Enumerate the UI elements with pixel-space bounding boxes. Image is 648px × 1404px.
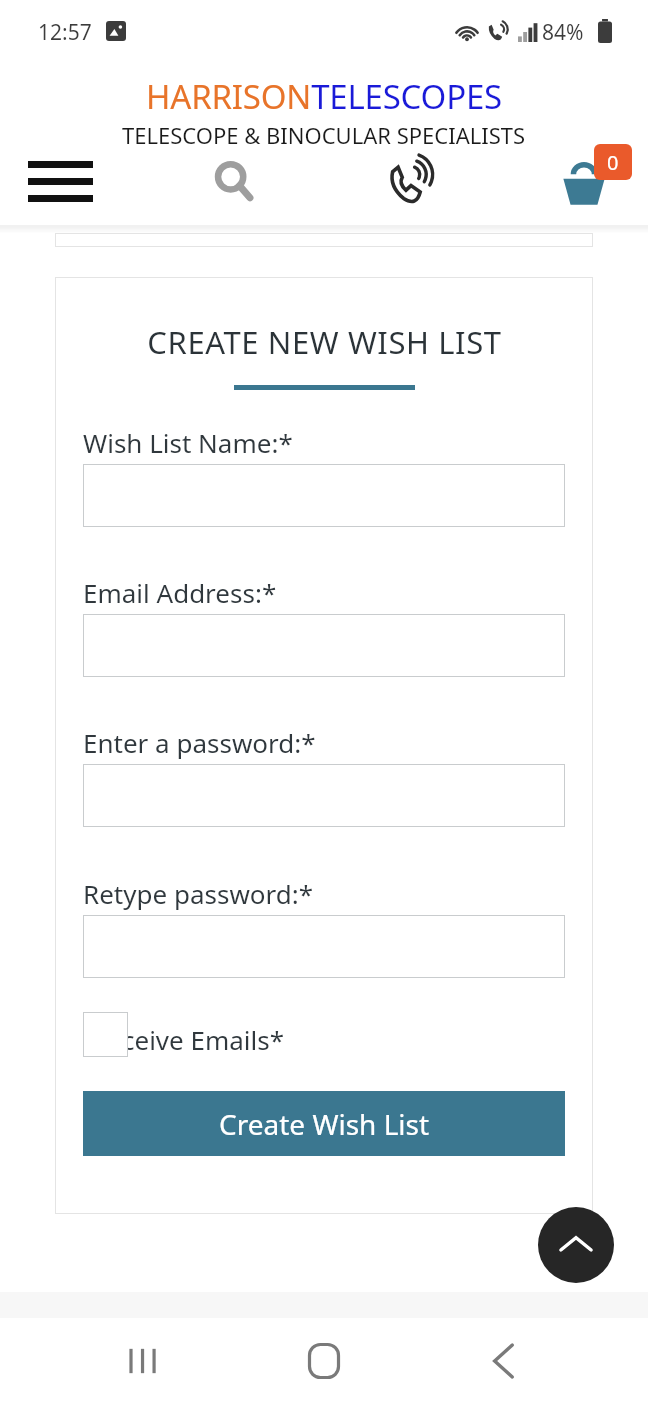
button[interactable]: Home [280, 1318, 368, 1404]
staticText: TELESCOPE & BINOCULAR SPECIALISTS [122, 120, 526, 150]
button[interactable] [83, 915, 565, 978]
staticText: Email Address:* [83, 575, 277, 610]
staticText: HARRISONTELESCOPES [146, 74, 503, 119]
staticText: Create Wish List [219, 1105, 430, 1143]
staticText: CREATE NEW WISH LIST [147, 321, 502, 363]
button[interactable]: Scroll to top [538, 1207, 614, 1283]
staticText: 0 [607, 149, 619, 176]
staticText: ceive Emails* [122, 1022, 285, 1057]
button[interactable]: Recent apps [100, 1318, 188, 1404]
button[interactable]: Create Wish List [83, 1091, 565, 1156]
button[interactable]: Call us [373, 150, 449, 212]
button[interactable]: Shopping basket, 0 items [552, 144, 632, 212]
button[interactable]: Search [196, 150, 272, 212]
staticText: 84% [542, 18, 584, 47]
staticText: Enter a password:* [83, 725, 316, 760]
button[interactable]: Menu [16, 150, 104, 212]
button[interactable]: Back [460, 1318, 548, 1404]
button[interactable] [83, 764, 565, 827]
button[interactable] [83, 464, 565, 527]
staticText: 12:57 [38, 18, 92, 47]
staticText: Wish List Name:* [83, 425, 293, 460]
button[interactable]: ceive Emails* [83, 1012, 323, 1064]
button[interactable] [83, 614, 565, 677]
staticText: Retype password:* [83, 876, 314, 911]
